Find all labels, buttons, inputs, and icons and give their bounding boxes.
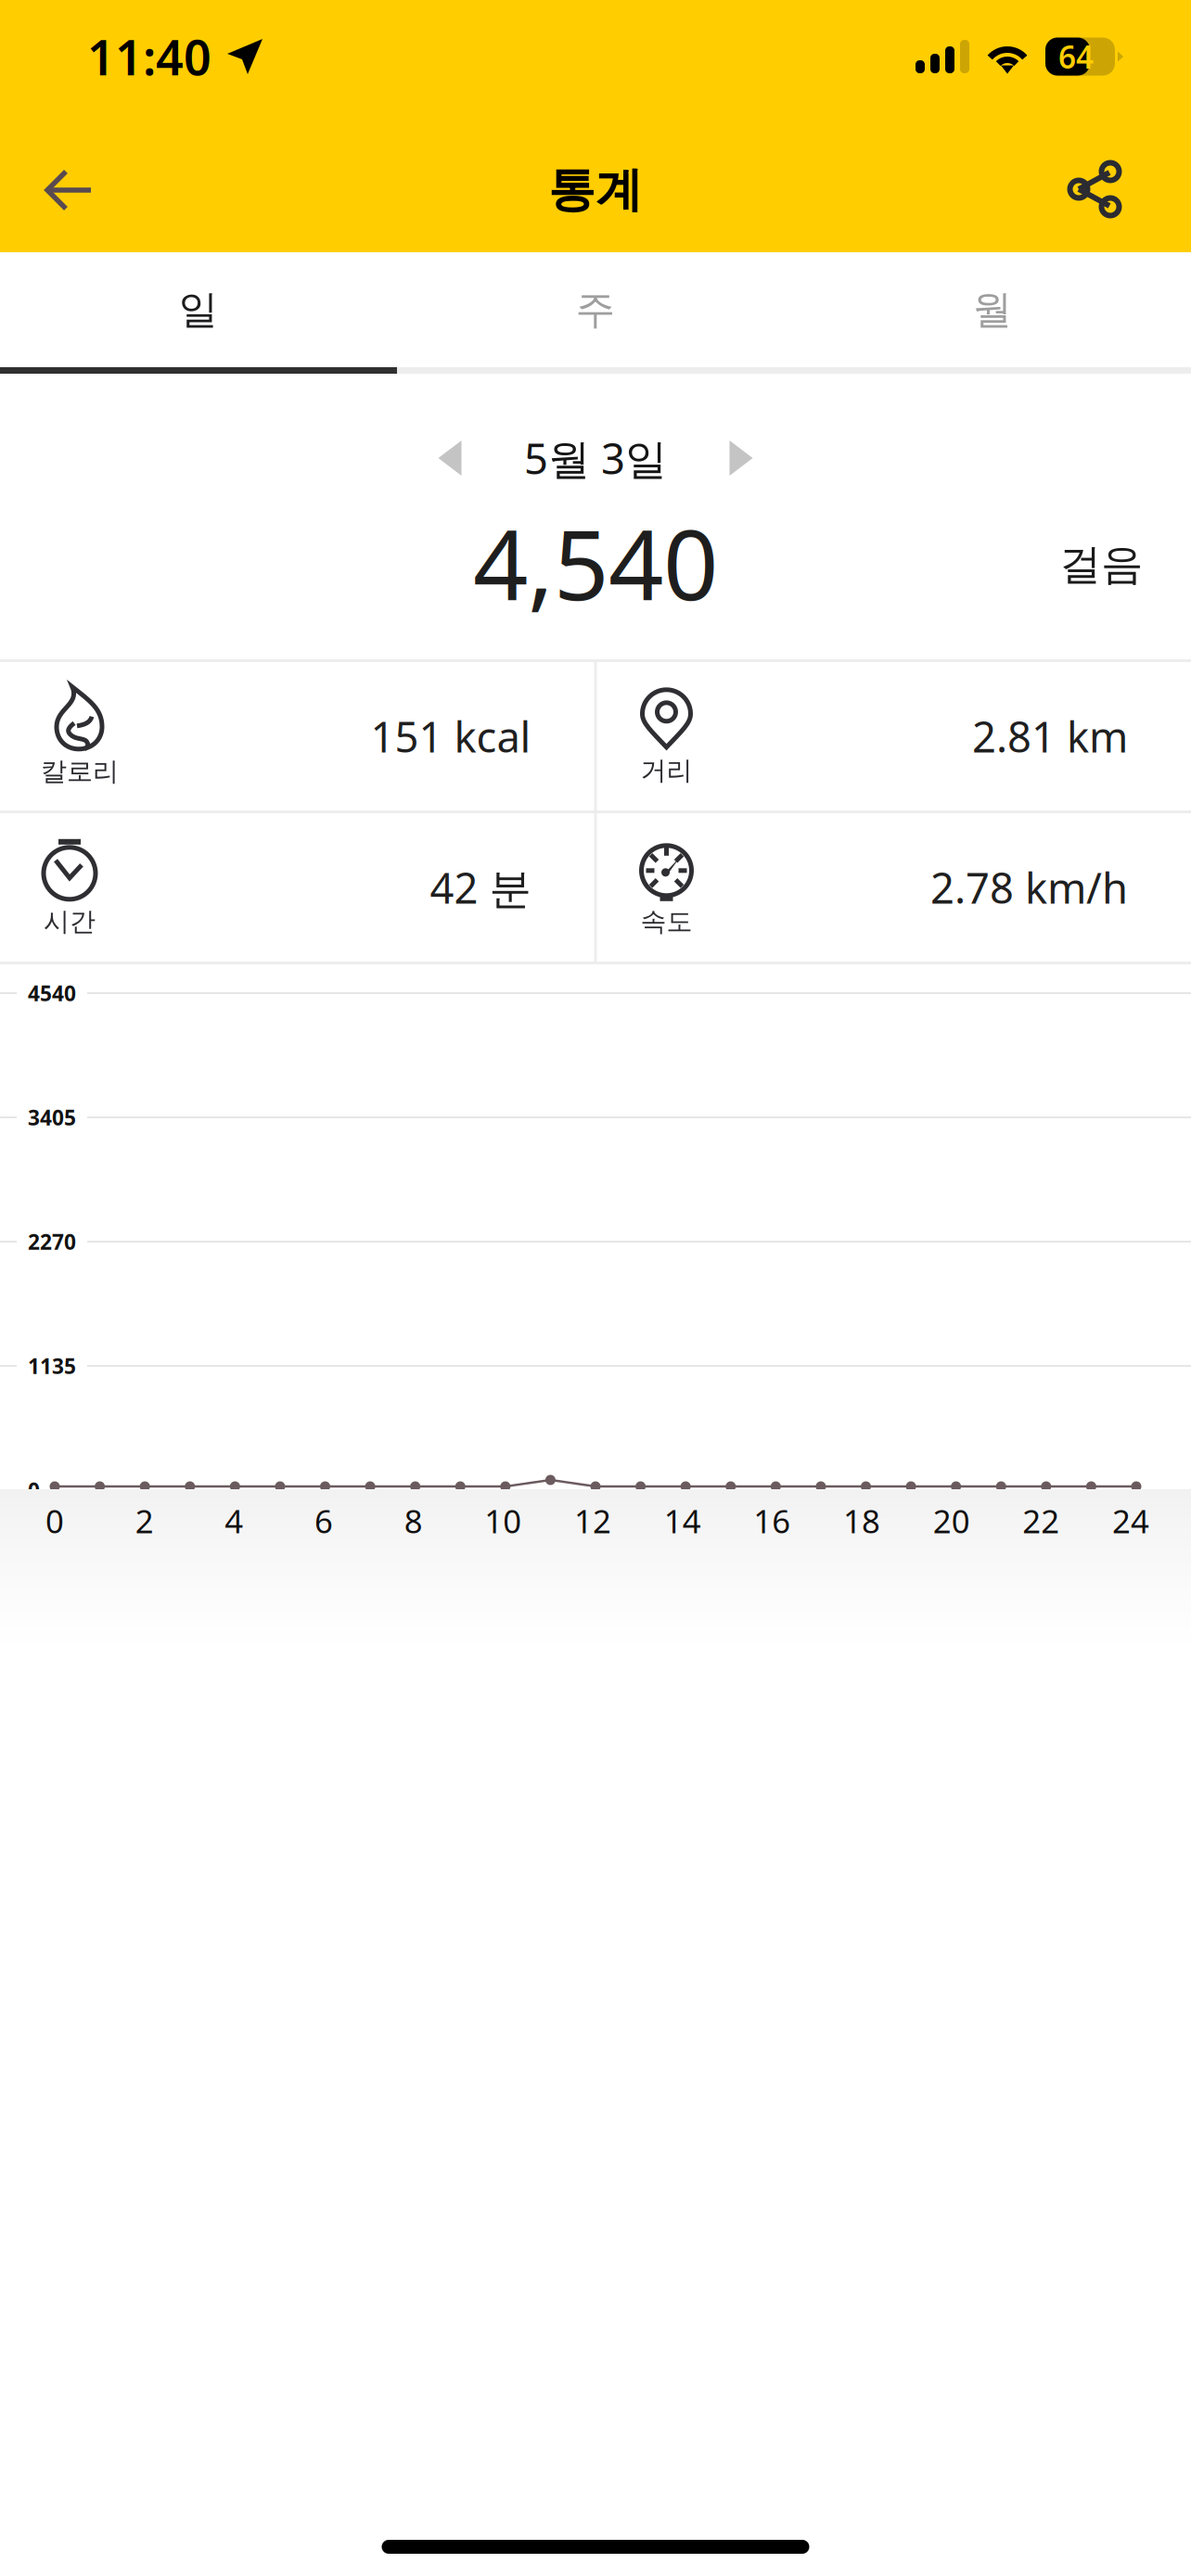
staticText: 시간 xyxy=(44,906,96,938)
button[interactable]: Share xyxy=(1039,121,1150,245)
button[interactable]: 칼로리 xyxy=(0,662,594,810)
staticText: 10 xyxy=(484,1499,522,1542)
staticText: 통계 xyxy=(548,161,643,219)
staticText: 2.78 km/h xyxy=(930,860,1128,915)
staticText: 12 xyxy=(574,1499,611,1542)
staticText: 8 xyxy=(404,1499,423,1542)
button[interactable]: Back xyxy=(13,120,124,246)
staticText: 11:40 xyxy=(87,25,211,89)
staticText: 0 xyxy=(28,1476,40,1504)
staticText: 64 xyxy=(1058,36,1094,77)
staticText: 151 kcal xyxy=(371,708,531,764)
staticText: 42 분 xyxy=(430,860,531,915)
staticText: 4 xyxy=(225,1499,243,1542)
staticText: 14 xyxy=(664,1499,701,1542)
button[interactable]: Previous day xyxy=(407,363,493,501)
staticText: 2 xyxy=(135,1499,154,1542)
button[interactable]: 시간 xyxy=(0,813,594,962)
staticText: 2270 xyxy=(28,1228,76,1256)
staticText: 칼로리 xyxy=(41,756,119,787)
staticText: 16 xyxy=(753,1499,791,1542)
staticText: 4,540 xyxy=(473,499,718,627)
staticText: 4540 xyxy=(28,979,76,1007)
button[interactable]: 월 xyxy=(794,252,1191,367)
staticText: 18 xyxy=(843,1499,880,1542)
staticText: 22 xyxy=(1022,1499,1060,1542)
button[interactable]: Next day xyxy=(698,363,784,501)
staticText: 2.81 km xyxy=(972,708,1128,764)
staticText: 6 xyxy=(314,1499,333,1542)
staticText: 월 xyxy=(973,285,1012,334)
button[interactable]: 거리 xyxy=(597,662,1191,810)
staticText: 5월 3일 xyxy=(524,430,667,486)
staticText: 3405 xyxy=(28,1103,76,1131)
staticText: 0 xyxy=(45,1499,64,1542)
staticText: 거리 xyxy=(640,755,692,787)
staticText: 일 xyxy=(179,285,218,334)
staticText: 1135 xyxy=(28,1352,76,1380)
button[interactable]: 속도 xyxy=(597,813,1191,962)
staticText: 20 xyxy=(933,1499,970,1542)
button[interactable]: 주 xyxy=(397,252,794,367)
button[interactable]: 일 xyxy=(0,252,397,367)
staticText: 걸음 xyxy=(1059,539,1143,591)
staticText: 주 xyxy=(576,285,615,334)
staticText: 24 xyxy=(1112,1499,1149,1542)
staticText: 속도 xyxy=(640,906,692,938)
